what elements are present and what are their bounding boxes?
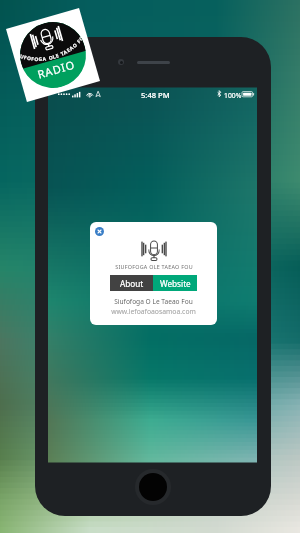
staticText: RADIO — [36, 56, 77, 82]
staticText: 100% — [224, 91, 242, 100]
staticText: 5:48 PM — [141, 90, 170, 100]
button[interactable]: App icon — [6, 8, 100, 102]
staticText: About — [120, 278, 144, 289]
button[interactable]: Close — [95, 227, 104, 236]
button[interactable]: About — [110, 275, 153, 291]
staticText: Website — [160, 278, 191, 289]
staticText: www.lefoafoaosamoa.com — [111, 307, 196, 316]
button[interactable]: Home — [135, 469, 171, 505]
button[interactable]: Website — [153, 275, 197, 291]
staticText: SIUFOFOGA OLE TAEAO FOU — [115, 263, 193, 270]
staticText: Siufofoga O Le Taeao Fou — [114, 297, 193, 306]
